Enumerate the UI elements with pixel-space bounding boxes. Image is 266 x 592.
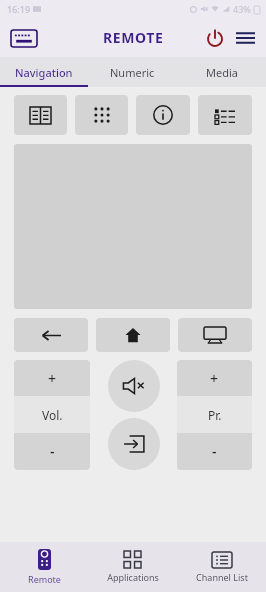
button[interactable]: Navigation <box>0 57 88 87</box>
button[interactable]: Mute <box>108 360 160 412</box>
button[interactable]: Guide <box>14 95 67 135</box>
staticText: Applications <box>107 571 159 583</box>
button[interactable]: Vol. up <box>14 360 90 396</box>
button[interactable]: Pr. down <box>177 433 252 470</box>
button[interactable]: Back <box>14 318 88 352</box>
button[interactable]: Power <box>200 23 230 53</box>
staticText: - <box>212 442 217 461</box>
staticText: Vol. <box>42 407 63 423</box>
staticText: Media <box>206 65 238 80</box>
button[interactable]: TV <box>178 318 252 352</box>
staticText: Pr. <box>208 407 222 423</box>
staticText: REMOTE <box>103 28 164 47</box>
button[interactable]: Applications <box>88 542 177 592</box>
button[interactable]: Info <box>136 95 190 135</box>
staticText: Remote <box>28 573 61 585</box>
button[interactable]: Remote <box>0 542 88 592</box>
button[interactable]: Keyboard <box>6 23 42 53</box>
staticText: Channel List <box>196 571 248 583</box>
button[interactable]: Home <box>96 318 170 352</box>
button[interactable]: Vol. down <box>14 433 90 470</box>
button[interactable]: Numeric <box>88 57 177 87</box>
button[interactable]: Options <box>198 95 252 135</box>
staticText: Navigation <box>15 65 73 80</box>
button[interactable]: Channel List <box>177 542 266 592</box>
staticText: 16:19 <box>7 3 31 15</box>
staticText: - <box>50 442 55 461</box>
button[interactable]: Menu <box>230 23 260 53</box>
button[interactable]: Media <box>177 57 266 87</box>
button[interactable]: Source <box>108 418 160 470</box>
staticText: + <box>210 369 219 388</box>
button[interactable]: Keypad <box>75 95 128 135</box>
staticText: + <box>48 369 57 388</box>
staticText: 43% <box>233 3 251 15</box>
staticText: Numeric <box>110 65 155 80</box>
button[interactable]: Pr. up <box>177 360 252 396</box>
